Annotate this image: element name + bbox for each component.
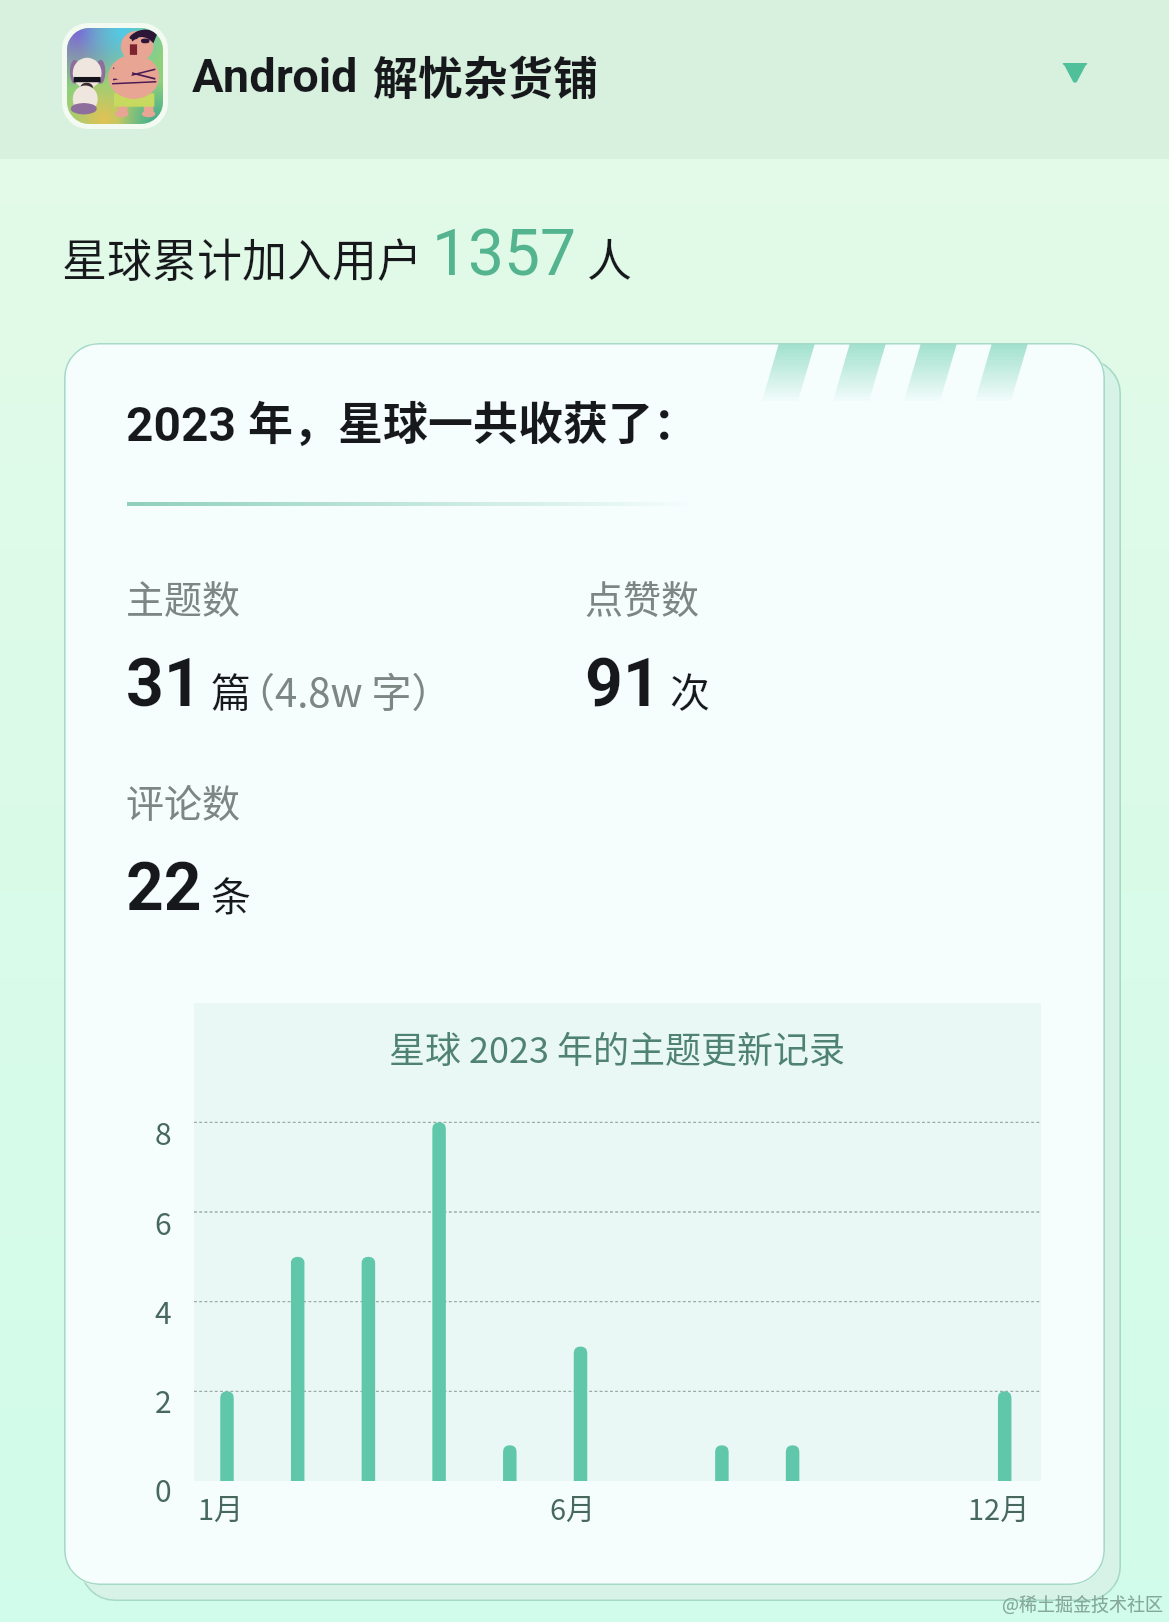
staticText: 星球累计加入用户 — [62, 225, 423, 290]
staticText: 91 — [585, 645, 661, 722]
button[interactable]: Community avatar — [67, 28, 163, 124]
staticText: （4.8w 字） — [235, 661, 452, 719]
staticText: 篇 — [211, 661, 251, 719]
staticText: 主题数 — [126, 569, 241, 624]
staticText: 评论数 — [126, 773, 241, 828]
staticText: 0 — [155, 1467, 172, 1510]
staticText: 点赞数 — [585, 569, 700, 624]
staticText: 12月 — [968, 1486, 1030, 1528]
staticText: 2 — [155, 1378, 172, 1421]
staticText: 8 — [155, 1110, 172, 1153]
button[interactable]: Expand menu — [1039, 37, 1111, 109]
staticText: Android — [192, 48, 358, 103]
staticText: 1357 — [432, 216, 576, 291]
staticText: 1月 — [198, 1486, 244, 1528]
staticText: 年，星球一共收获了： — [248, 388, 699, 453]
staticText: 解忧杂货铺 — [373, 43, 599, 108]
staticText: 星球 2023 年的主题更新记录 — [193, 1021, 1041, 1073]
staticText: @稀土掘金技术社区 — [1002, 1590, 1164, 1616]
staticText: 22 — [126, 849, 202, 926]
staticText: 条 — [211, 865, 251, 923]
staticText: 4 — [155, 1289, 172, 1332]
staticText: 31 — [126, 645, 202, 722]
staticText: 2023 — [126, 396, 237, 452]
staticText: 6月 — [550, 1486, 596, 1528]
staticText: 人 — [587, 225, 633, 290]
staticText: 次 — [670, 661, 710, 719]
staticText: 6 — [155, 1200, 172, 1243]
